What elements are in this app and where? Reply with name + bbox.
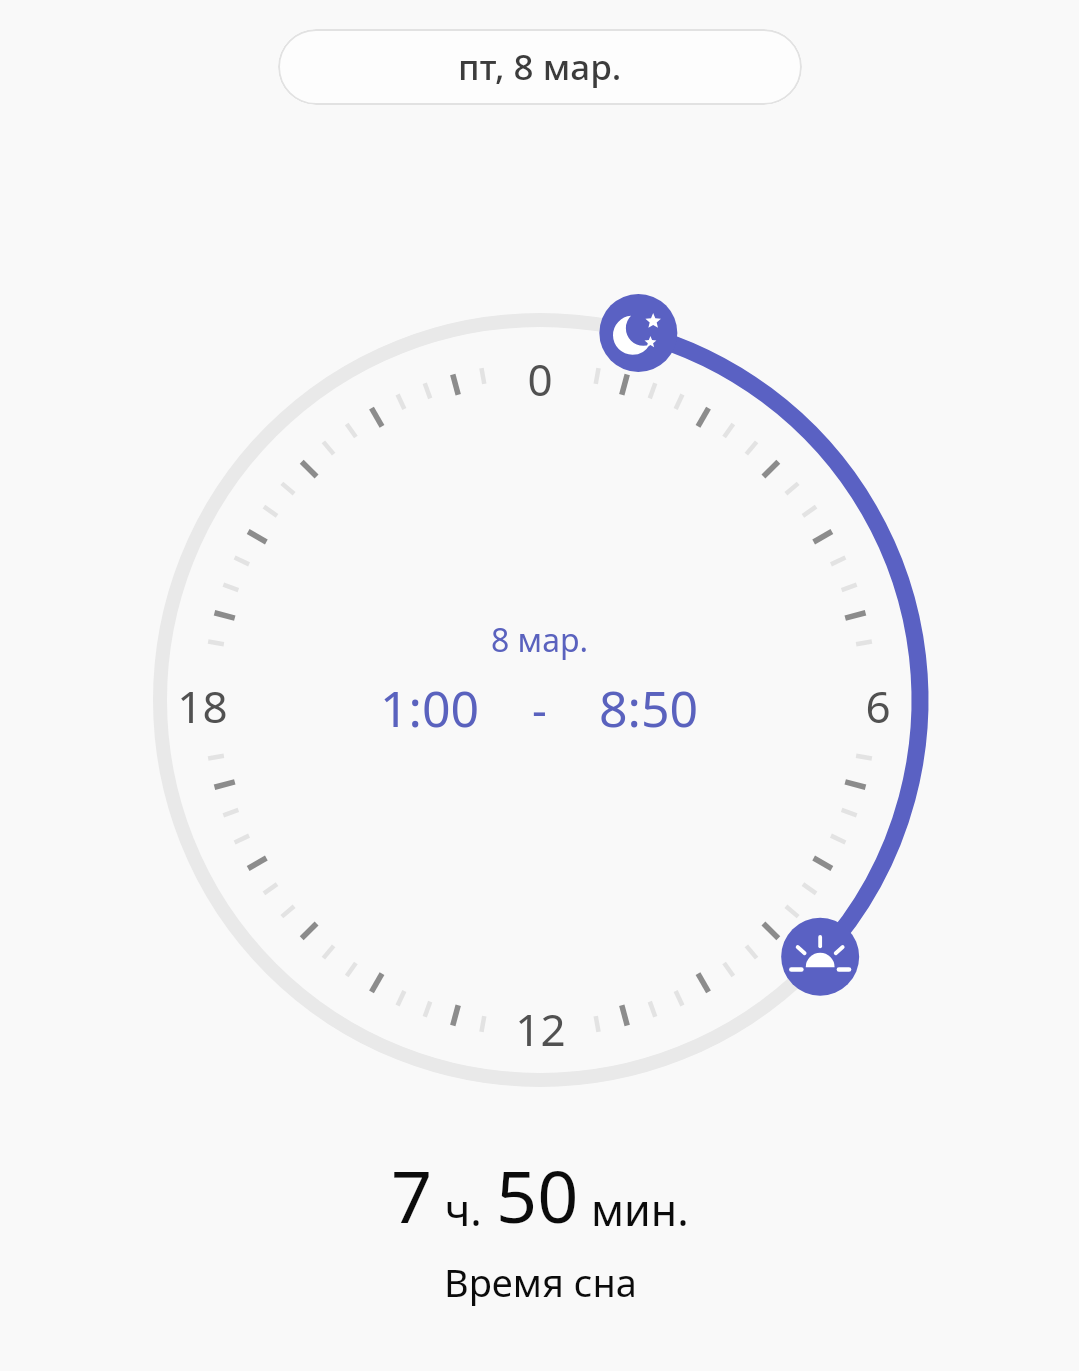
- staticText: пт, 8 мар.: [458, 43, 622, 91]
- button[interactable]: Sleep dial, 1:00 to 8:50: [0, 0, 1079, 1371]
- button[interactable]: пт, 8 мар.: [278, 29, 802, 105]
- staticText: 7: [391, 1146, 433, 1244]
- staticText: 50: [496, 1146, 579, 1244]
- staticText: 6: [865, 676, 891, 728]
- staticText: Время сна: [444, 1256, 637, 1308]
- staticText: 8:50: [599, 674, 699, 742]
- staticText: -: [532, 677, 547, 740]
- staticText: 1:00: [380, 674, 480, 742]
- staticText: мин.: [591, 1180, 689, 1239]
- staticText: 8 мар.: [491, 618, 589, 662]
- staticText: ч.: [445, 1180, 482, 1239]
- staticText: 0: [527, 349, 553, 401]
- staticText: 12: [515, 999, 566, 1051]
- staticText: 18: [177, 676, 228, 728]
